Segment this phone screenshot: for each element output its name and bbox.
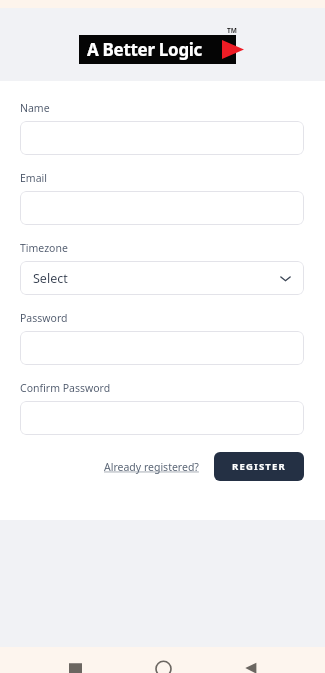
button[interactable]: Home [151, 649, 175, 673]
staticText: REGISTER [232, 460, 286, 473]
staticText: Already registered? [104, 460, 199, 474]
button[interactable] [20, 331, 304, 365]
button[interactable]: Already registered? [101, 456, 202, 478]
staticText: TM [227, 26, 237, 35]
button[interactable] [20, 191, 304, 225]
button[interactable] [20, 121, 304, 155]
staticText: Name [20, 101, 50, 115]
staticText: Select [33, 270, 68, 287]
button[interactable]: A Better Logic logo [79, 26, 247, 64]
staticText: Email [20, 171, 47, 185]
staticText: Password [20, 311, 68, 325]
staticText: Confirm Password [20, 381, 111, 395]
staticText: A Better Logic [87, 38, 203, 61]
button[interactable]: Recent apps [63, 649, 87, 673]
button[interactable]: Timezone selector [20, 261, 304, 295]
button[interactable]: REGISTER [214, 452, 304, 481]
staticText: Timezone [20, 241, 68, 255]
button[interactable] [20, 401, 304, 435]
button[interactable]: Back [238, 649, 262, 673]
